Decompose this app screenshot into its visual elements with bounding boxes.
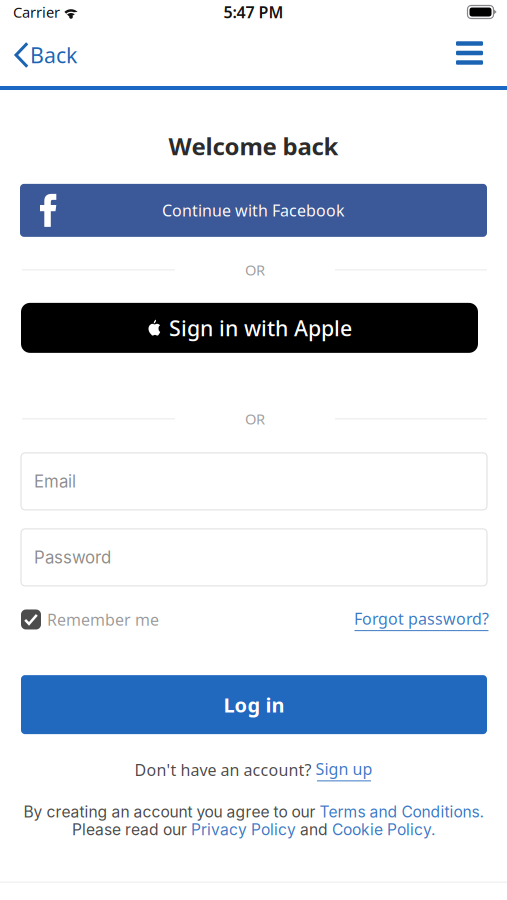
staticText: Email <box>34 471 76 491</box>
staticText: Don't have an account? <box>134 759 311 780</box>
staticText: Forgot password? <box>354 608 489 629</box>
staticText: Sign up <box>315 758 372 779</box>
staticText: and <box>296 820 332 839</box>
staticText: Terms and Conditions. <box>319 802 483 821</box>
staticText: Sign in with Apple <box>169 314 352 342</box>
button[interactable]: Forgot password? <box>354 608 489 631</box>
staticText: Privacy Policy <box>191 820 296 839</box>
staticText: Carrier <box>13 2 60 22</box>
button[interactable]: Continue with Facebook <box>0 184 507 237</box>
button[interactable]: Remember me <box>21 609 159 630</box>
staticText: Back <box>30 41 77 69</box>
staticText: OR <box>245 260 265 280</box>
staticText: Password <box>34 547 111 567</box>
staticText: By creating an account you agree to our <box>23 802 319 821</box>
staticText: Cookie Policy. <box>332 820 435 839</box>
staticText: Log in <box>223 691 284 718</box>
button[interactable]: Sign up <box>315 758 372 781</box>
staticText: Welcome back <box>168 130 338 162</box>
staticText: Continue with Facebook <box>162 200 345 221</box>
button[interactable]: Log in <box>0 675 507 734</box>
button[interactable]: Back <box>0 25 89 85</box>
staticText: 5:47 PM <box>223 1 283 23</box>
staticText: Remember me <box>47 609 159 630</box>
button[interactable]: Sign in with Apple <box>0 303 507 353</box>
staticText: OR <box>245 409 265 429</box>
staticText: Please read our <box>72 820 191 839</box>
button[interactable]: Menu <box>438 25 507 85</box>
